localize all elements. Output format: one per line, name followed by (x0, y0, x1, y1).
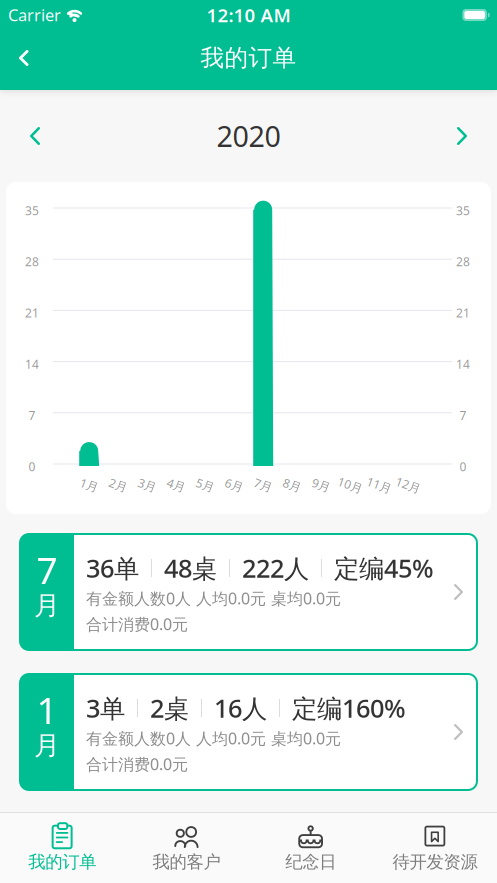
staticText: 1 (36, 685, 57, 735)
staticText: 35 (456, 202, 470, 219)
staticText: 待开发资源 (392, 851, 477, 873)
staticText: 2月 (109, 477, 128, 493)
staticText: 有金额人数0人 人均0.0元 桌均0.0元 (86, 727, 341, 749)
staticText: 9月 (312, 477, 331, 493)
staticText: 定编45% (334, 551, 434, 585)
staticText: 28 (456, 253, 470, 270)
button[interactable]: Back (0, 30, 42, 90)
staticText: 48桌 (164, 551, 217, 585)
staticText: 0 (459, 458, 466, 475)
staticText: 我的订单 (28, 851, 96, 873)
staticText: 有金额人数0人 人均0.0元 桌均0.0元 (86, 587, 341, 609)
staticText: 合计消费0.0元 (86, 613, 188, 635)
staticText: 8月 (283, 477, 302, 493)
button[interactable]: 我的客户 (124, 813, 248, 883)
staticText: 28 (25, 253, 39, 270)
staticText: 7 (28, 407, 35, 423)
button[interactable]: Previous year (0, 111, 40, 161)
staticText: 定编160% (292, 691, 406, 725)
staticText: 11月 (366, 477, 392, 493)
button[interactable]: 1 (20, 674, 477, 790)
staticText: 我的客户 (152, 851, 220, 873)
staticText: 纪念日 (285, 851, 336, 873)
staticText: 36单 (86, 551, 139, 585)
staticText: 14 (25, 356, 39, 372)
staticText: 我的订单 (200, 43, 296, 73)
staticText: 0 (28, 458, 35, 475)
staticText: 7月 (254, 477, 273, 493)
staticText: 7 (36, 545, 57, 595)
staticText: 2桌 (150, 691, 189, 725)
staticText: Carrier (8, 4, 61, 26)
staticText: 3单 (86, 691, 125, 725)
staticText: 10月 (337, 477, 363, 493)
button[interactable]: Next year (457, 111, 497, 161)
staticText: 合计消费0.0元 (86, 753, 188, 775)
button[interactable]: 纪念日 (248, 813, 373, 883)
staticText: 7 (459, 407, 466, 423)
staticText: 222人 (242, 551, 309, 585)
staticText: 4月 (167, 477, 186, 493)
staticText: 3月 (138, 477, 157, 493)
staticText: 35 (25, 202, 39, 219)
staticText: 16人 (214, 691, 267, 725)
staticText: 5月 (196, 477, 215, 493)
staticText: 6月 (225, 477, 244, 493)
staticText: 月 (34, 589, 60, 622)
button[interactable]: 7 (20, 534, 477, 650)
staticText: 21 (456, 305, 470, 321)
staticText: 21 (25, 305, 39, 321)
staticText: 14 (456, 356, 470, 372)
staticText: 12月 (395, 477, 421, 493)
staticText: 1月 (80, 477, 99, 493)
button[interactable]: 待开发资源 (373, 813, 497, 883)
staticText: 2020 (216, 116, 280, 155)
staticText: 月 (34, 729, 60, 762)
button[interactable]: 我的订单 (0, 813, 124, 883)
staticText: 12:10 AM (206, 2, 290, 28)
